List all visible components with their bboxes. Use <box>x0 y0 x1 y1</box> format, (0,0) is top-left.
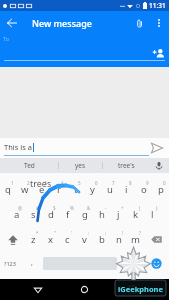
button[interactable]: & <box>76 201 93 226</box>
staticText: q <box>5 183 11 196</box>
button[interactable]: tree's <box>103 158 149 173</box>
button[interactable]: Backspace <box>144 226 169 251</box>
button[interactable]: , <box>20 251 43 276</box>
staticText: f <box>66 208 70 221</box>
staticText: x <box>48 233 54 246</box>
staticText: g <box>82 208 88 221</box>
button[interactable]: 6 <box>84 176 101 201</box>
button[interactable]: # <box>25 201 42 226</box>
button[interactable]: % <box>59 201 76 226</box>
staticText: 0 <box>163 180 166 186</box>
button[interactable]: . <box>117 251 143 276</box>
staticText: 3 <box>44 180 47 186</box>
staticText: y <box>90 183 95 196</box>
staticText: e <box>39 183 45 196</box>
button[interactable]: 0 <box>152 176 169 201</box>
button[interactable]: Send <box>145 138 169 158</box>
button[interactable]: 2 <box>16 176 33 201</box>
button[interactable]: : <box>76 226 93 251</box>
button[interactable]: Back <box>27 279 48 300</box>
staticText: r <box>57 183 61 196</box>
staticText: " <box>54 230 56 236</box>
button[interactable]: Home <box>74 279 95 300</box>
button[interactable]: Add recipient <box>148 43 168 63</box>
button[interactable]: 3 <box>33 176 50 201</box>
staticText: : <box>88 230 90 236</box>
staticText: z <box>31 233 36 246</box>
button[interactable]: Attach file <box>131 11 148 35</box>
button[interactable]: ( <box>127 201 144 226</box>
staticText: d <box>48 208 54 221</box>
staticText: s <box>31 208 36 221</box>
button[interactable]: 1 <box>0 176 16 201</box>
staticText: * <box>36 230 39 236</box>
button[interactable]: $ <box>42 201 59 226</box>
staticText: b <box>99 233 105 246</box>
staticText: w <box>21 183 29 196</box>
button[interactable]: + <box>110 201 127 226</box>
button[interactable]: Shift <box>0 226 25 251</box>
staticText: ' <box>71 230 73 236</box>
staticText: 5 <box>78 180 81 186</box>
button[interactable]: 9 <box>135 176 152 201</box>
staticText: yes <box>75 161 86 170</box>
staticText: 2 <box>27 180 30 186</box>
button[interactable]: Navigate up <box>0 11 24 35</box>
staticText: 11:31 <box>149 1 166 10</box>
button[interactable]: ?123 <box>0 251 20 276</box>
button[interactable]: Recent apps <box>122 279 143 300</box>
staticText: ( <box>139 205 141 211</box>
staticText: @ <box>18 205 23 211</box>
button[interactable]: ? <box>127 226 144 251</box>
staticText: $ <box>53 205 56 211</box>
staticText: + <box>121 205 124 211</box>
staticText: # <box>36 205 39 211</box>
staticText: - <box>105 205 107 211</box>
staticText: ?123 <box>4 260 16 267</box>
staticText: To <box>3 35 10 42</box>
staticText: 4 <box>61 180 64 186</box>
button[interactable]: - <box>93 201 110 226</box>
button[interactable]: 8 <box>118 176 135 201</box>
button[interactable]: Ted <box>0 158 58 173</box>
button[interactable]: Voice input <box>149 158 169 173</box>
staticText: j <box>117 208 120 221</box>
button[interactable]: More options <box>148 11 169 35</box>
staticText: l <box>151 208 154 221</box>
button[interactable]: ; <box>93 226 110 251</box>
button[interactable]: 7 <box>101 176 118 201</box>
staticText: iGeekphone <box>118 284 163 294</box>
staticText: % <box>70 205 74 211</box>
staticText: u <box>107 183 113 196</box>
button[interactable]: ) <box>144 201 161 226</box>
staticText: v <box>82 233 87 246</box>
staticText: k <box>133 208 139 221</box>
staticText: m <box>131 233 140 246</box>
button[interactable]: yes <box>59 158 102 173</box>
button[interactable]: 5 <box>67 176 84 201</box>
button[interactable]: @ <box>8 201 25 226</box>
button[interactable]: ' <box>59 226 76 251</box>
staticText: New message <box>32 17 92 29</box>
staticText: 9 <box>146 180 149 186</box>
staticText: p <box>158 183 164 196</box>
staticText: ; <box>105 230 107 236</box>
staticText: n <box>116 233 122 246</box>
button[interactable]: * <box>25 226 42 251</box>
staticText: 8 <box>129 180 132 186</box>
button[interactable]: Emoji <box>143 251 169 276</box>
staticText: & <box>87 205 91 211</box>
button[interactable]: ! <box>110 226 127 251</box>
staticText: ! <box>122 230 124 236</box>
button[interactable]: 4 <box>50 176 67 201</box>
staticText: tree's <box>118 161 135 170</box>
staticText: . <box>129 258 131 268</box>
staticText: ? <box>139 230 141 236</box>
staticText: This is a <box>4 142 32 152</box>
button[interactable]: " <box>42 226 59 251</box>
staticText: i <box>125 183 128 196</box>
staticText: c <box>65 233 70 246</box>
staticText: 1 <box>11 180 14 186</box>
staticText: a <box>14 208 20 221</box>
